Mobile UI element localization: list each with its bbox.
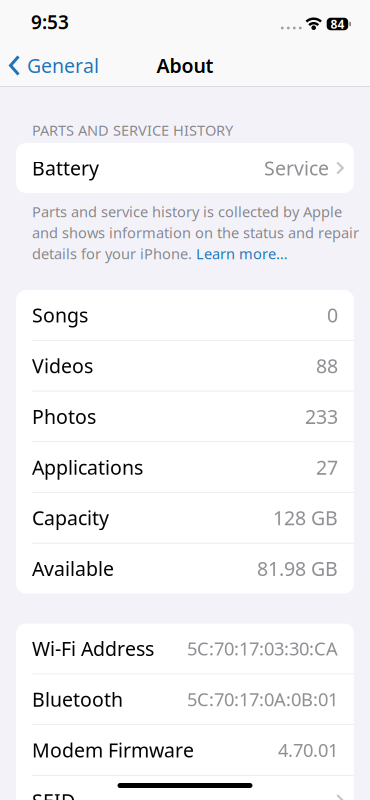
staticText: Learn more…	[196, 244, 288, 263]
staticText: 88	[316, 352, 338, 379]
staticText: Photos	[32, 403, 96, 430]
staticText: Modem Firmware	[32, 737, 194, 763]
staticText: 128 GB	[273, 504, 338, 531]
staticText: Service	[264, 155, 329, 181]
staticText: Bluetooth	[32, 686, 123, 712]
staticText: Available	[32, 555, 114, 582]
staticText: and shows information on the status and …	[32, 223, 359, 242]
staticText: 5C:70:17:0A:0B:01	[187, 687, 338, 712]
staticText: Battery	[32, 155, 99, 181]
staticText: Wi-Fi Address	[32, 635, 154, 662]
staticText: 5C:70:17:03:30:CA	[187, 636, 338, 661]
staticText: PARTS AND SERVICE HISTORY	[32, 120, 233, 140]
button[interactable]: Battery	[0, 143, 370, 193]
staticText: Parts and service history is collected b…	[32, 202, 342, 221]
staticText: About	[156, 52, 213, 79]
button[interactable]: General	[0, 52, 99, 79]
staticText: SEID	[32, 787, 75, 800]
staticText: Applications	[32, 454, 143, 480]
staticText: 9:53	[31, 9, 69, 35]
staticText: Songs	[32, 302, 88, 328]
staticText: General	[27, 52, 99, 79]
staticText: Videos	[32, 352, 93, 379]
staticText: 0	[327, 302, 338, 328]
staticText: details for your iPhone.	[32, 244, 196, 263]
staticText: 4.70.01	[278, 737, 338, 762]
button[interactable]: SEID	[16, 776, 354, 800]
staticText: 81.98 GB	[257, 555, 338, 582]
button[interactable]: Learn more…	[196, 244, 288, 263]
staticText: 27	[316, 454, 338, 480]
staticText: Capacity	[32, 504, 109, 531]
staticText: 84	[330, 16, 344, 32]
staticText: 233	[305, 403, 338, 430]
